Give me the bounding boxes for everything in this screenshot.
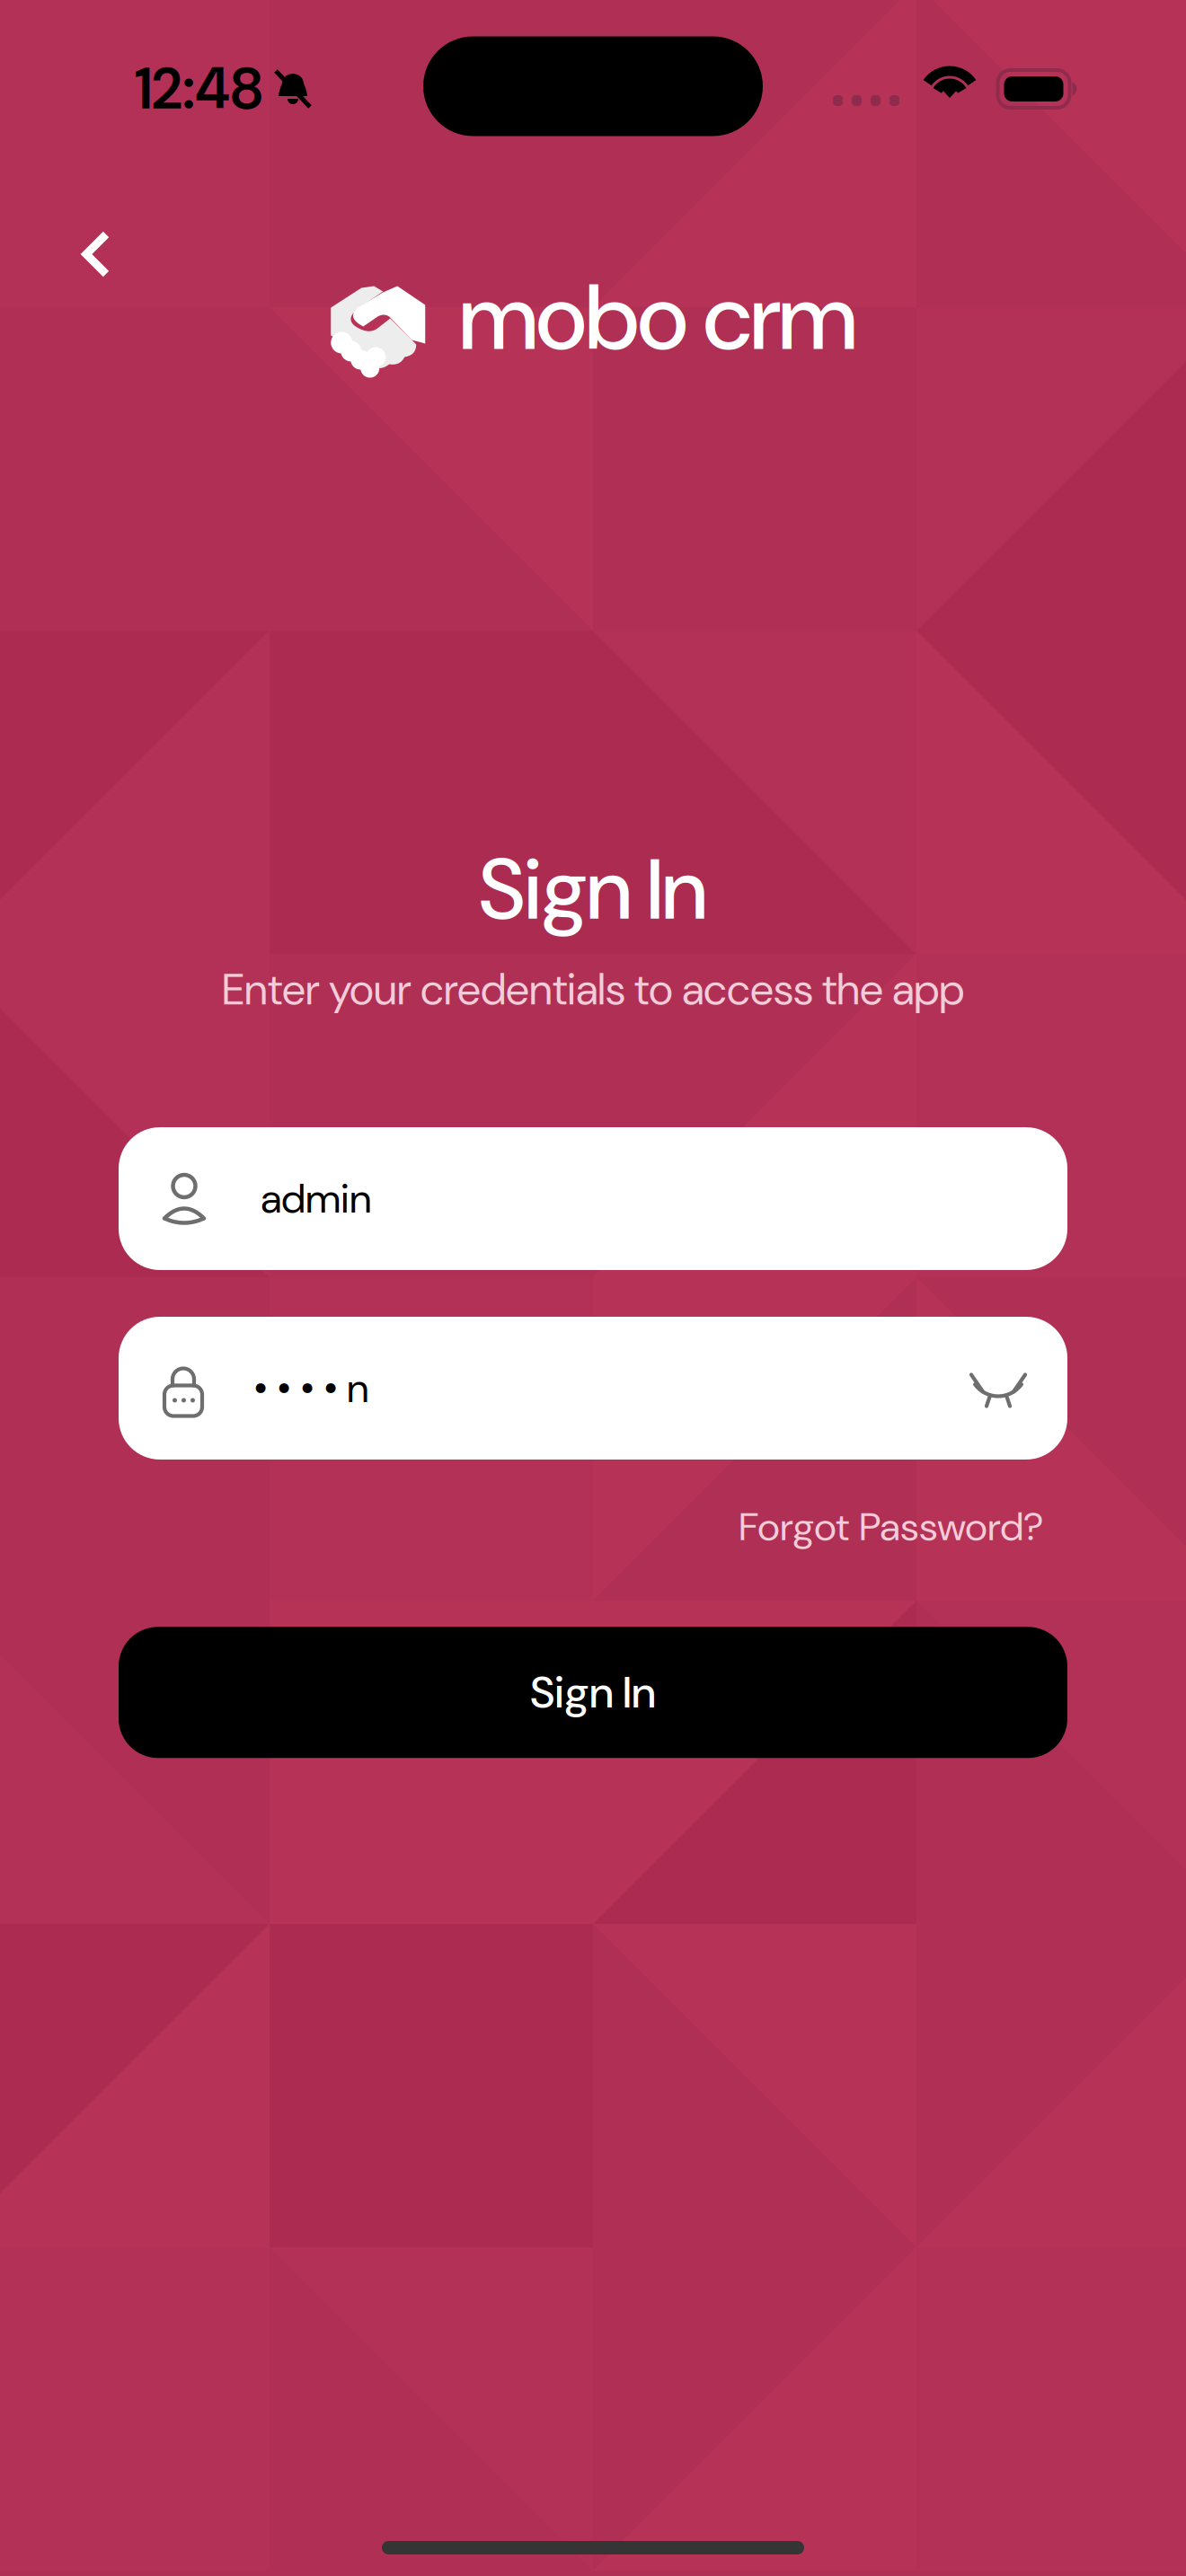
staticText: Enter your credentials to access the app [222, 962, 964, 1018]
button[interactable]: Back [0, 265, 146, 371]
button[interactable]: Sign In [119, 1627, 1067, 1758]
staticText: 12:48 [135, 51, 263, 126]
staticText: admin [261, 1172, 371, 1225]
button[interactable]: Show password [970, 1369, 1026, 1407]
staticText: Sign In [479, 835, 707, 945]
staticText: • • • • n [253, 1362, 368, 1415]
staticText: Forgot Password? [739, 1501, 1044, 1552]
button[interactable]: Forgot Password? [739, 1501, 1044, 1552]
staticText: Sign In [530, 1664, 656, 1721]
staticText: mobo crm [459, 259, 857, 377]
